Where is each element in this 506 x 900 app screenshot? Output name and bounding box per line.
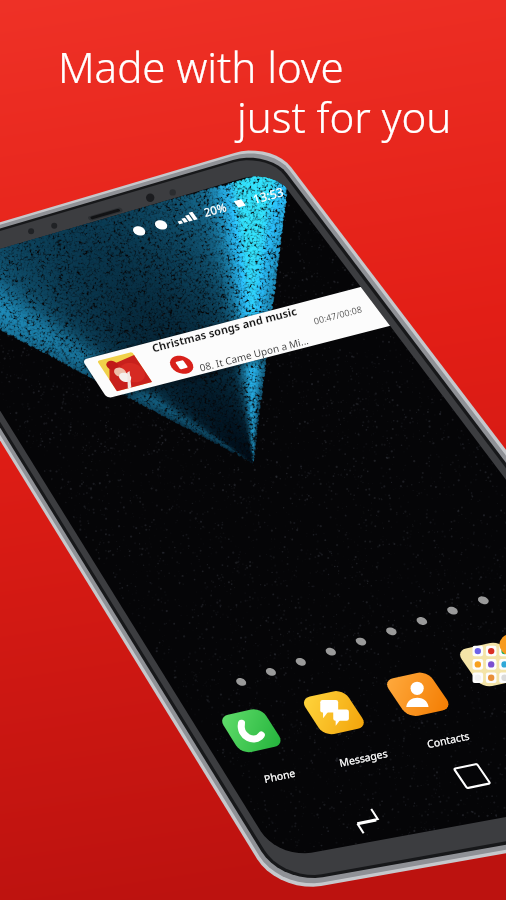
staticText: just for you: [237, 88, 452, 145]
staticText: Made with love: [58, 38, 344, 95]
